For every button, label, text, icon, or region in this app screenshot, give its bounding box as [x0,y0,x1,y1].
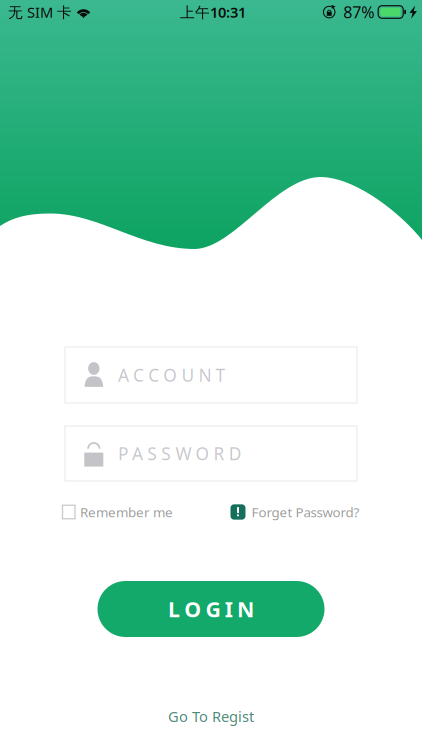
button[interactable]: Remember me [62,499,173,525]
staticText: I [225,595,233,623]
staticText: Go To Regist [168,706,254,726]
staticText: PASSWORD [118,442,242,465]
staticText: 上午10:31 [180,2,246,22]
button[interactable]: Forget Password? [230,499,359,525]
button[interactable]: L [97,581,324,637]
staticText: 87% [343,1,374,23]
staticText: G [205,595,220,623]
staticText: L [168,595,180,623]
staticText: 无 SIM 卡 [8,2,72,22]
staticText: N [237,595,254,623]
staticText: ACCOUNT [118,363,226,386]
staticText: Forget Password? [251,503,359,521]
staticText: O [184,595,201,623]
button[interactable]: Go To Regist [168,706,254,726]
staticText: Remember me [80,503,173,521]
